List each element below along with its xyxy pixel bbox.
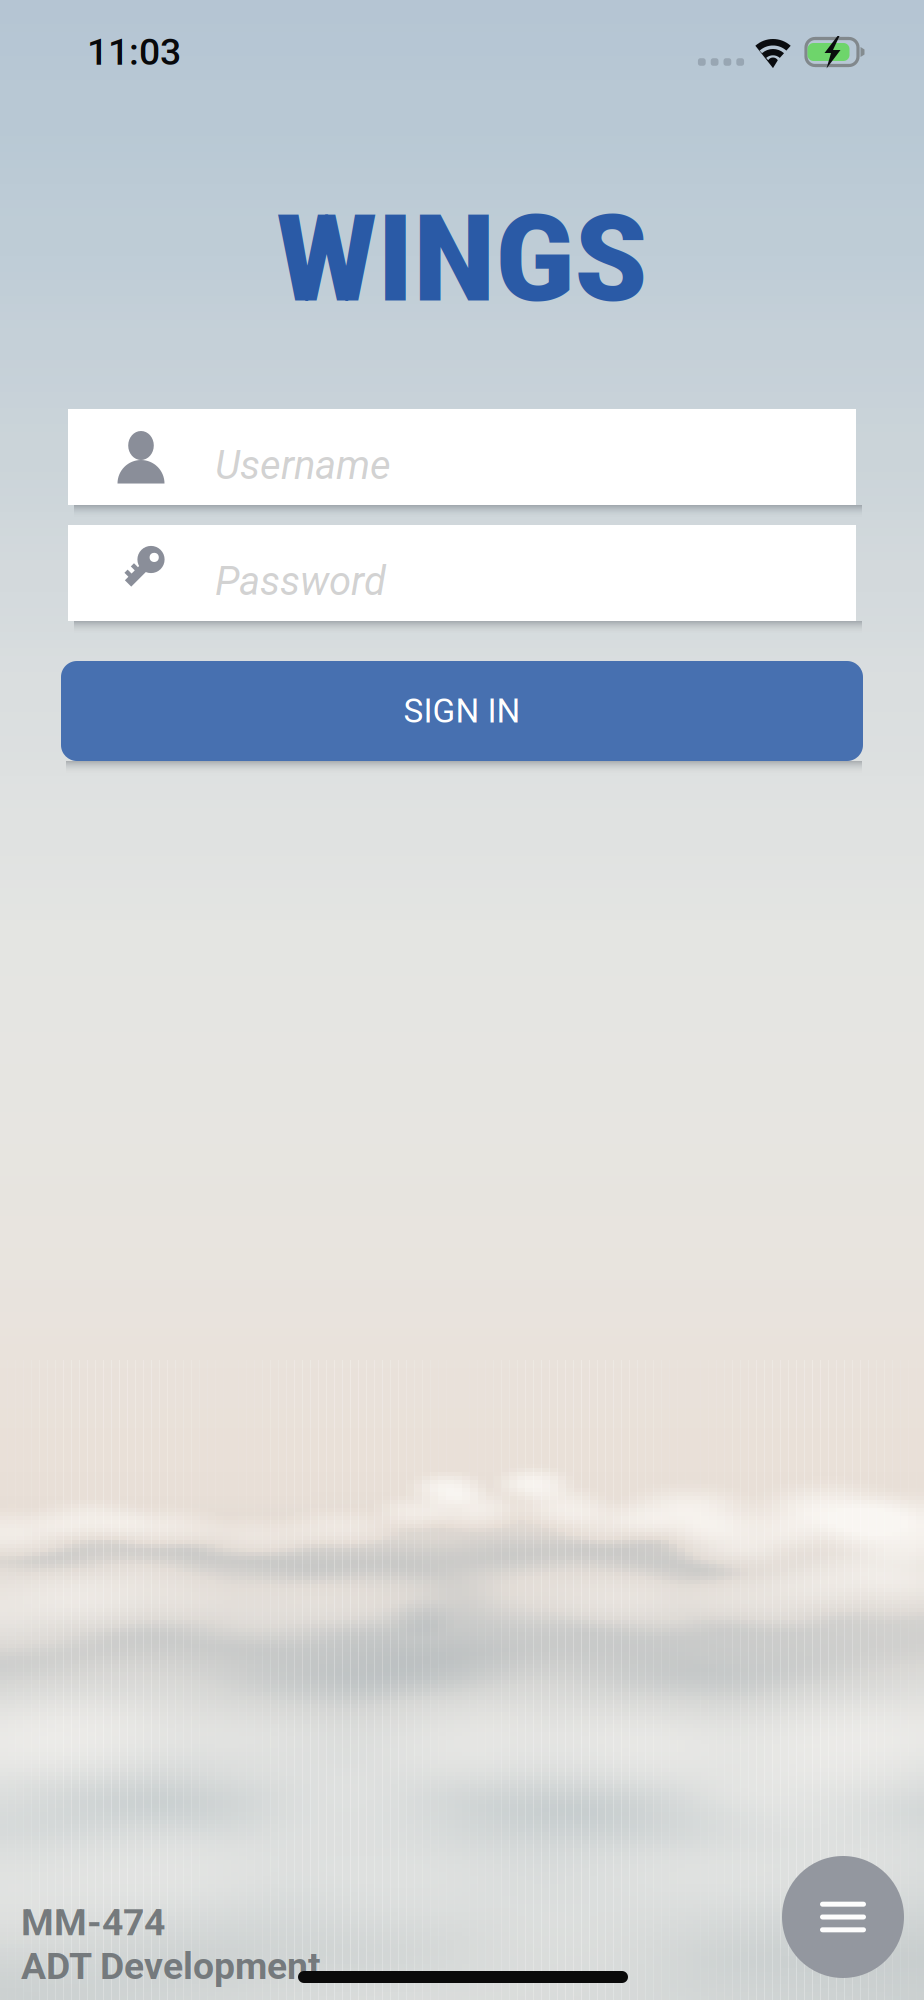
staticText: Password (215, 558, 386, 605)
staticText: WINGS (276, 188, 647, 330)
button[interactable]: Password (68, 525, 856, 621)
staticText: MM-474 (21, 1900, 165, 1944)
button[interactable]: SIGN IN (61, 661, 863, 761)
staticText: Username (215, 442, 391, 489)
staticText: SIGN IN (403, 691, 520, 731)
staticText: 11:03 (87, 30, 181, 74)
button[interactable]: Menu (782, 1856, 904, 1978)
button[interactable]: Username (68, 409, 856, 505)
staticText: ADT Development (21, 1944, 321, 1988)
